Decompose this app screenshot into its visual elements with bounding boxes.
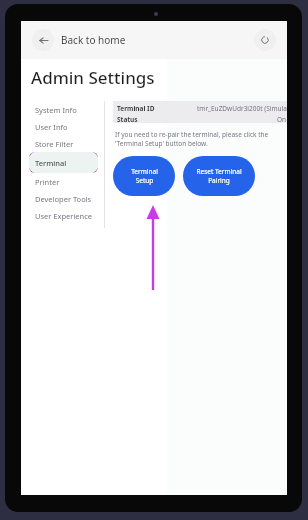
staticText: User Experience: [35, 211, 93, 221]
staticText: Reset Terminal Pairing: [196, 167, 242, 185]
staticText: Back to home: [61, 33, 126, 47]
button[interactable]: Terminal: [29, 152, 98, 173]
button[interactable]: Reset Terminal Pairing: [183, 156, 255, 196]
staticText: Admin Settings: [31, 66, 155, 89]
staticText: Terminal ID: [117, 104, 155, 113]
button[interactable]: Refresh: [254, 29, 276, 51]
button[interactable]: Developer Tools: [29, 190, 98, 207]
staticText: Developer Tools: [35, 194, 92, 204]
button[interactable]: Back: [32, 29, 54, 51]
button[interactable]: User Info: [29, 118, 98, 135]
button[interactable]: System Info: [29, 101, 98, 118]
staticText: Status: [117, 115, 138, 123]
staticText: Terminal: [35, 158, 67, 168]
staticText: If you need to re-pair the terminal, ple…: [115, 130, 269, 148]
button[interactable]: Printer: [29, 173, 98, 190]
staticText: On: [277, 115, 287, 123]
staticText: Terminal Setup: [131, 167, 158, 185]
staticText: System Info: [35, 105, 77, 115]
button[interactable]: Back to home: [61, 33, 126, 47]
staticText: Printer: [35, 177, 60, 187]
staticText: tmr_EuZDwUdr3i200t (Simula: [197, 104, 287, 113]
button[interactable]: Store Filter: [29, 135, 98, 152]
button[interactable]: User Experience: [29, 207, 98, 224]
staticText: Store Filter: [35, 139, 74, 149]
staticText: User Info: [35, 122, 68, 132]
button[interactable]: Terminal Setup: [113, 156, 175, 196]
